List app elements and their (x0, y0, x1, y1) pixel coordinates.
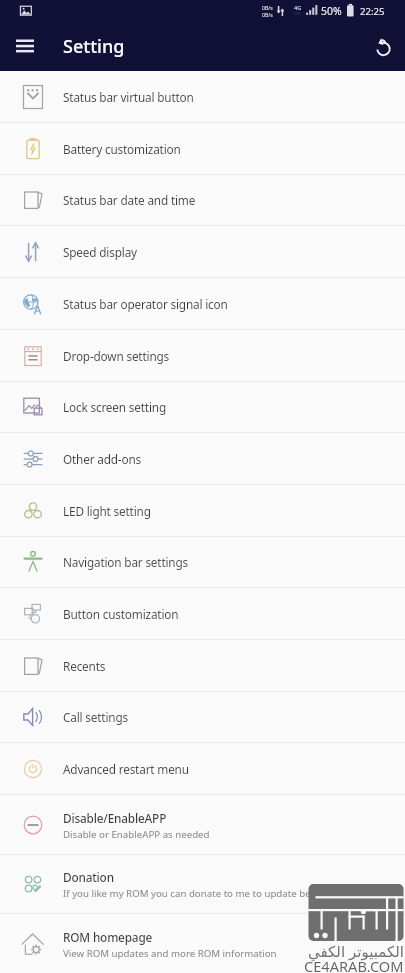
button[interactable]: Recents (0, 640, 405, 692)
button[interactable]: Call settings (0, 691, 405, 743)
staticText: Status bar operator signal icon (63, 296, 228, 312)
button[interactable]: Lock screen setting (0, 381, 405, 433)
button[interactable]: Drop-down settings (0, 330, 405, 382)
staticText: Donation (63, 869, 114, 885)
staticText: Call settings (63, 709, 128, 725)
staticText: Disable or EnableAPP as needed (63, 828, 210, 841)
staticText: Status bar virtual button (63, 89, 194, 105)
button[interactable]: LED light setting (0, 485, 405, 537)
staticText: Disable/EnableAPP (63, 810, 167, 826)
staticText: CE4ARAB.COM (304, 956, 404, 973)
button[interactable]: Advanced restart menu (0, 743, 405, 795)
staticText: ROM homepage (63, 929, 153, 945)
staticText: الكمبيوتر الكفي (308, 941, 404, 961)
button[interactable]: Open navigation menu (5, 27, 45, 67)
staticText: Drop-down settings (63, 348, 170, 364)
staticText: 0B/s (262, 11, 273, 18)
button[interactable]: Speed display (0, 226, 405, 278)
button[interactable]: Status bar date and time (0, 174, 405, 226)
staticText: Setting (63, 34, 125, 59)
staticText: Battery customization (63, 141, 181, 157)
button[interactable]: Battery customization (0, 123, 405, 175)
staticText: Navigation bar settings (63, 554, 189, 570)
button[interactable]: Status bar virtual button (0, 71, 405, 123)
staticText: View ROM updates and more ROM informatio… (63, 947, 277, 960)
staticText: Button customization (63, 606, 179, 622)
staticText: If you like my ROM you can donate to me … (63, 887, 360, 900)
staticText: Lock screen setting (63, 399, 166, 415)
staticText: Recents (63, 658, 106, 674)
button[interactable]: Restore defaults (363, 27, 403, 67)
staticText: Advanced restart menu (63, 761, 189, 777)
staticText: Speed display (63, 244, 137, 260)
staticText: LED light setting (63, 503, 151, 519)
staticText: 0B/s (262, 4, 273, 11)
button[interactable]: Disable/EnableAPP (0, 795, 405, 855)
button[interactable]: Donation (0, 854, 405, 914)
button[interactable]: Button customization (0, 588, 405, 640)
staticText: Other add-ons (63, 451, 142, 467)
staticText: LTE (294, 11, 301, 16)
staticText: Status bar date and time (63, 192, 196, 208)
button[interactable]: ROM homepage (0, 914, 405, 973)
staticText: 4G (294, 4, 302, 12)
staticText: 50% (321, 4, 342, 18)
staticText: 22:25 (360, 5, 385, 18)
button[interactable]: Other add-ons (0, 433, 405, 485)
button[interactable]: Status bar operator signal icon (0, 278, 405, 330)
button[interactable]: Navigation bar settings (0, 536, 405, 588)
